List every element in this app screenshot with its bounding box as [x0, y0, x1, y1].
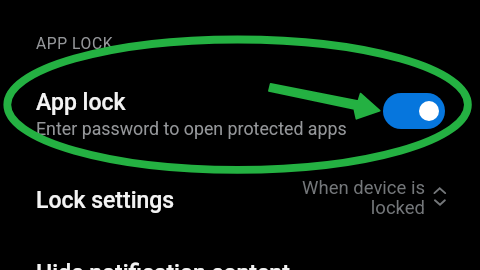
- button[interactable]: Toggle app lock: [383, 93, 445, 129]
- button[interactable]: App lock: [0, 72, 480, 142]
- staticText: APP LOCK: [36, 35, 114, 53]
- staticText: Lock settings: [36, 187, 175, 214]
- button[interactable]: Lock settings: [0, 170, 480, 225]
- staticText: App lock: [36, 89, 126, 116]
- button[interactable]: Hide notification content: [0, 244, 480, 270]
- button[interactable]: Expand lock settings: [430, 184, 450, 212]
- staticText: Enter password to open protected apps: [36, 118, 347, 139]
- staticText: When device is locked: [297, 177, 425, 218]
- staticText: Hide notification content: [36, 260, 290, 270]
